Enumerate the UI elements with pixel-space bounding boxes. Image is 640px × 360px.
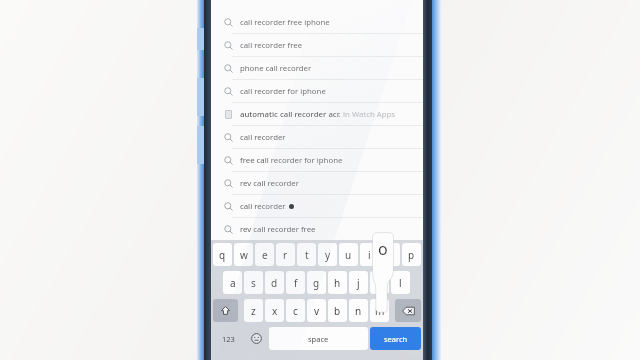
- button[interactable]: rev call recorder: [211, 172, 423, 194]
- staticText: 123: [222, 334, 235, 344]
- button[interactable]: search: [370, 327, 421, 350]
- button[interactable]: d: [265, 271, 284, 294]
- staticText: y: [325, 248, 331, 262]
- button[interactable]: b: [328, 299, 347, 322]
- button[interactable]: Shift: [213, 299, 238, 322]
- staticText: search: [384, 334, 408, 344]
- button[interactable]: 123: [213, 327, 243, 350]
- button[interactable]: k: [370, 271, 389, 294]
- staticText: call recorder for iphone: [240, 86, 326, 97]
- button[interactable]: call recorder free iphone: [211, 11, 423, 33]
- staticText: s: [251, 276, 256, 290]
- button[interactable]: Emoji: [245, 327, 267, 350]
- button[interactable]: space: [269, 327, 368, 350]
- button[interactable]: j: [349, 271, 368, 294]
- button[interactable]: x: [265, 299, 284, 322]
- button[interactable]: h: [328, 271, 347, 294]
- staticText: rev call recorder: [240, 178, 299, 189]
- staticText: v: [314, 304, 320, 318]
- staticText: phone call recorder: [240, 63, 312, 74]
- staticText: n: [355, 304, 362, 318]
- staticText: u: [345, 248, 352, 262]
- staticText: call recorder free iphone: [240, 17, 330, 28]
- button[interactable]: n: [349, 299, 368, 322]
- staticText: w: [240, 248, 248, 262]
- button[interactable]: e: [255, 243, 274, 266]
- staticText: automatic call recorder acr.: [240, 109, 341, 120]
- button[interactable]: u: [339, 243, 358, 266]
- staticText: c: [293, 304, 298, 318]
- button[interactable]: a: [223, 271, 242, 294]
- button[interactable]: m: [370, 299, 389, 322]
- staticText: a: [230, 276, 236, 290]
- staticText: o: [378, 238, 388, 260]
- button[interactable]: o: [381, 243, 400, 266]
- button[interactable]: l: [391, 271, 410, 294]
- staticText: call recorder: [240, 132, 286, 143]
- button[interactable]: free call recorder for iphone: [211, 149, 423, 171]
- staticText: call recorder free: [240, 40, 303, 51]
- button[interactable]: call recorder for iphone: [211, 80, 423, 102]
- button[interactable]: rev call recorder free: [211, 218, 423, 240]
- staticText: j: [357, 276, 360, 290]
- staticText: b: [334, 304, 341, 318]
- button[interactable]: f: [286, 271, 305, 294]
- staticText: q: [219, 248, 226, 262]
- staticText: f: [294, 276, 298, 290]
- staticText: l: [399, 276, 402, 290]
- button[interactable]: call recorder: [211, 126, 423, 148]
- staticText: call recorder: [240, 201, 286, 212]
- button[interactable]: g: [307, 271, 326, 294]
- button[interactable]: c: [286, 299, 305, 322]
- button[interactable]: phone call recorder: [211, 57, 423, 79]
- button[interactable]: w: [234, 243, 253, 266]
- staticText: space: [308, 334, 329, 344]
- button[interactable]: Backspace: [395, 299, 421, 322]
- button[interactable]: s: [244, 271, 263, 294]
- staticText: i: [368, 248, 371, 262]
- button[interactable]: v: [307, 299, 326, 322]
- button[interactable]: t: [297, 243, 316, 266]
- staticText: m: [375, 304, 385, 318]
- staticText: g: [313, 276, 320, 290]
- staticText: r: [283, 248, 288, 262]
- staticText: x: [272, 304, 278, 318]
- button[interactable]: z: [244, 299, 263, 322]
- button[interactable]: call recorder free: [211, 34, 423, 56]
- staticText: in Watch Apps: [341, 109, 396, 120]
- staticText: rev call recorder free: [240, 224, 316, 235]
- staticText: p: [408, 248, 415, 262]
- button[interactable]: r: [276, 243, 295, 266]
- staticText: free call recorder for iphone: [240, 155, 343, 166]
- button[interactable]: call recorder: [211, 195, 423, 217]
- button[interactable]: p: [402, 243, 421, 266]
- staticText: t: [305, 248, 309, 262]
- staticText: e: [262, 248, 268, 262]
- button[interactable]: automatic call recorder acr.: [211, 103, 423, 125]
- staticText: h: [334, 276, 341, 290]
- staticText: z: [251, 304, 256, 318]
- staticText: d: [271, 276, 278, 290]
- staticText: o: [387, 248, 394, 262]
- button[interactable]: i: [360, 243, 379, 266]
- button[interactable]: q: [213, 243, 232, 266]
- button[interactable]: y: [318, 243, 337, 266]
